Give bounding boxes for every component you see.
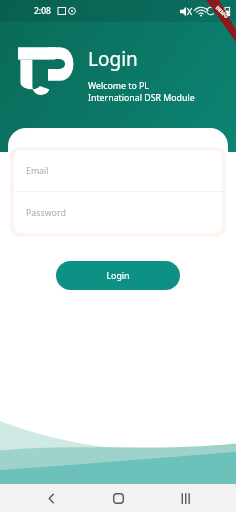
staticText: 2:08	[34, 5, 51, 17]
button[interactable]: Password	[14, 192, 222, 233]
staticText: Login	[88, 46, 138, 72]
button[interactable]: Email	[14, 150, 222, 191]
button[interactable]: Home	[101, 484, 135, 512]
staticText: DEMO	[214, 4, 230, 21]
staticText: Login	[106, 270, 130, 282]
button[interactable]: Recent apps	[169, 484, 203, 512]
staticText: Welcome to PL	[88, 80, 149, 92]
button[interactable]: Back	[34, 484, 68, 512]
button[interactable]: Login	[56, 261, 180, 290]
staticText: Email	[26, 165, 49, 177]
staticText: Password	[26, 207, 66, 219]
staticText: International DSR Module	[88, 92, 195, 104]
